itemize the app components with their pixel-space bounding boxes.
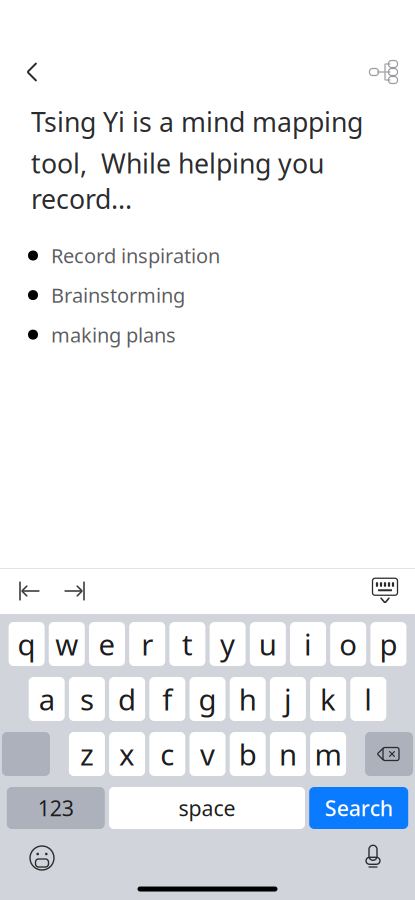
- staticText: o: [339, 624, 357, 663]
- button[interactable]: Back: [10, 50, 54, 94]
- button[interactable]: l: [350, 677, 386, 721]
- staticText: space: [178, 794, 235, 822]
- staticText: j: [284, 679, 292, 718]
- button[interactable]: e: [89, 622, 125, 666]
- staticText: l: [364, 679, 372, 718]
- button[interactable]: 123: [7, 787, 105, 829]
- staticText: a: [39, 679, 55, 718]
- staticText: tool, While helping you record...: [31, 145, 324, 216]
- button[interactable]: m: [310, 732, 346, 776]
- staticText: m: [315, 734, 342, 773]
- button[interactable]: j: [270, 677, 306, 721]
- button[interactable]: Dictate: [351, 838, 395, 878]
- staticText: Brainstorming: [51, 282, 185, 308]
- button[interactable]: Move to end: [52, 569, 96, 613]
- button[interactable]: h: [230, 677, 266, 721]
- staticText: e: [98, 624, 115, 663]
- staticText: y: [220, 624, 235, 663]
- staticText: h: [239, 679, 257, 718]
- staticText: x: [119, 734, 135, 773]
- staticText: w: [55, 624, 78, 663]
- button[interactable]: q: [9, 622, 45, 666]
- button[interactable]: v: [189, 732, 225, 776]
- staticText: g: [198, 679, 216, 718]
- staticText: i: [304, 624, 312, 663]
- button[interactable]: x: [109, 732, 145, 776]
- button[interactable]: t: [169, 622, 205, 666]
- button[interactable]: r: [129, 622, 165, 666]
- staticText: t: [182, 624, 193, 663]
- staticText: Record inspiration: [51, 242, 220, 269]
- button[interactable]: Search: [309, 787, 408, 829]
- button[interactable]: Move to start: [8, 569, 52, 613]
- button[interactable]: Delete: [365, 732, 413, 776]
- staticText: Tsing Yi is a mind mapping: [31, 104, 363, 139]
- button[interactable]: c: [149, 732, 185, 776]
- button[interactable]: s: [69, 677, 105, 721]
- staticText: f: [162, 679, 172, 718]
- button[interactable]: w: [49, 622, 85, 666]
- button[interactable]: n: [270, 732, 306, 776]
- staticText: s: [80, 679, 94, 718]
- button[interactable]: Emoji: [20, 838, 64, 878]
- staticText: z: [80, 734, 94, 773]
- staticText: r: [141, 624, 153, 663]
- button[interactable]: f: [149, 677, 185, 721]
- button[interactable]: Mind map: [361, 50, 405, 94]
- button[interactable]: u: [250, 622, 286, 666]
- button[interactable]: o: [330, 622, 366, 666]
- staticText: making plans: [51, 321, 176, 348]
- staticText: 123: [38, 794, 74, 822]
- button[interactable]: space: [109, 787, 305, 829]
- staticText: n: [279, 734, 297, 773]
- staticText: u: [259, 624, 277, 663]
- button[interactable]: g: [189, 677, 225, 721]
- button[interactable]: Hide keyboard: [363, 569, 407, 613]
- button[interactable]: d: [109, 677, 145, 721]
- staticText: d: [118, 679, 136, 718]
- button[interactable]: z: [69, 732, 105, 776]
- staticText: k: [320, 679, 336, 718]
- button[interactable]: b: [230, 732, 266, 776]
- staticText: p: [379, 624, 397, 663]
- staticText: Search: [325, 794, 393, 822]
- button[interactable]: i: [290, 622, 326, 666]
- button[interactable]: p: [370, 622, 406, 666]
- staticText: v: [200, 734, 215, 773]
- staticText: c: [160, 734, 174, 773]
- button[interactable]: k: [310, 677, 346, 721]
- staticText: q: [18, 624, 36, 663]
- button[interactable]: a: [29, 677, 65, 721]
- staticText: b: [239, 734, 257, 773]
- button[interactable]: Shift: [2, 732, 50, 776]
- button[interactable]: y: [210, 622, 246, 666]
